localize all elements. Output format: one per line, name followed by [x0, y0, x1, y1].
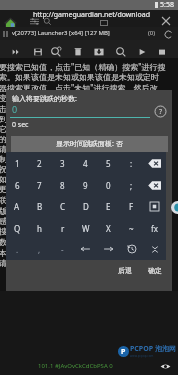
staticText: (0): [148, 29, 156, 37]
staticText: A: [14, 201, 20, 212]
button[interactable]: Settings: [30, 17, 39, 26]
button[interactable]: ;: [120, 174, 143, 196]
button[interactable]: C: [51, 195, 74, 217]
staticText: 4: [83, 158, 88, 169]
staticText: 联系方式：support@gameguardian.net 官网。: [0, 194, 172, 205]
button[interactable]: 1: [6, 152, 28, 174]
button[interactable]: X: [97, 217, 120, 239]
button[interactable]: Home: [3, 15, 18, 30]
staticText: ~: [129, 223, 134, 234]
staticText: .: [16, 244, 19, 255]
button[interactable]: 9: [74, 174, 97, 196]
staticText: 请勿用于联机游戏，以免造成封号等后果。: [0, 258, 151, 268]
staticText: 2: [37, 158, 42, 169]
staticText: 101.1 #JAvOvCkCdCbPSA 0: [38, 362, 113, 370]
staticText: 击"模糊搜索"按钮继续搜索。重复这个过程直: [0, 103, 158, 114]
staticText: 器搜索更改值，点击"未知"进行搜索。然后改: [0, 82, 158, 93]
button[interactable]: [143, 238, 166, 260]
button[interactable]: Play: [136, 46, 148, 58]
staticText: X: [106, 223, 111, 234]
button[interactable]: 5: [97, 152, 120, 174]
button[interactable]: GameGuardian: [171, 201, 178, 214]
button[interactable]: 6: [6, 174, 28, 196]
button[interactable]: Export: [93, 46, 105, 58]
staticText: Q: [14, 223, 21, 234]
button[interactable]: E: [97, 195, 120, 217]
staticText: 输入将要跳跃的秒数:: [12, 94, 77, 104]
button[interactable]: Help: [154, 105, 167, 118]
button[interactable]: Close: [159, 14, 173, 28]
staticText: D: [83, 201, 89, 212]
button[interactable]: Search unknown: [50, 46, 62, 58]
button[interactable]: W: [74, 217, 97, 239]
staticText: ,: [38, 244, 41, 255]
button[interactable]: r: [51, 217, 74, 239]
staticText: 要搜索已知值，点击"已知（精确）搜索"进行搜: [0, 61, 166, 72]
staticText: 5:58: [160, 0, 174, 10]
staticText: PCPOP 泡泡网: [130, 344, 176, 354]
staticText: www.pcpop.com: [130, 354, 154, 358]
button[interactable]: 7: [28, 174, 51, 196]
button[interactable]: Cast: [100, 20, 108, 28]
staticText: 它，使其保持不变。如果找不到，请尝试其它: [0, 124, 159, 134]
staticText: r: [61, 223, 65, 234]
staticText: E: [106, 201, 111, 212]
button[interactable]: 2: [28, 152, 51, 174]
button[interactable]: [74, 238, 97, 260]
button[interactable]: .: [6, 238, 28, 260]
button[interactable]: -: [51, 238, 74, 260]
button[interactable]: B: [28, 195, 51, 217]
staticText: W: [82, 223, 90, 234]
staticText: 0: [12, 103, 18, 115]
button[interactable]: Delete: [72, 46, 84, 58]
button[interactable]: 4: [74, 152, 97, 174]
button[interactable]: [143, 174, 166, 196]
staticText: 1: [15, 158, 20, 169]
button[interactable]: 3: [51, 152, 74, 174]
staticText: ?: [159, 107, 163, 117]
button[interactable]: h: [28, 217, 51, 239]
button[interactable]: [143, 195, 166, 217]
staticText: v[20773] Launcher3 [x64] [127 MB]: [12, 29, 110, 37]
button[interactable]: 显示时间跳跃面板: 否: [11, 136, 168, 152]
staticText: C: [60, 201, 66, 212]
button[interactable]: [97, 238, 120, 260]
staticText: 9: [83, 180, 88, 191]
button[interactable]: Stop: [156, 46, 168, 58]
button[interactable]: F: [120, 195, 143, 217]
button[interactable]: Forward: [10, 46, 22, 58]
button[interactable]: 8: [51, 174, 74, 196]
staticText: 搜索类型：精确、模糊、范围、未知等等。: [0, 226, 151, 236]
staticText: 5: [106, 158, 111, 169]
button[interactable]: fx: [143, 217, 166, 239]
staticText: :: [130, 158, 133, 169]
button[interactable]: [120, 238, 143, 260]
button[interactable]: A: [6, 195, 28, 217]
button[interactable]: Search: [115, 46, 127, 58]
staticText: 6: [15, 180, 20, 191]
staticText: 3: [60, 158, 65, 169]
staticText: 的搜索类型或数据类型来进行搜索。更多帮助: [0, 134, 159, 144]
button[interactable]: ~: [120, 217, 143, 239]
staticText: 索。如果该值是未知或如果该值是未知或定时: [0, 72, 159, 82]
button[interactable]: 0: [97, 174, 120, 196]
button[interactable]: D: [74, 195, 97, 217]
staticText: B: [37, 201, 43, 212]
button[interactable]: Search: [43, 17, 52, 26]
button[interactable]: Save: [32, 46, 44, 58]
staticText: P: [121, 347, 126, 357]
staticText: -: [61, 244, 64, 255]
staticText: 祝你游戏愉快！开心每一天，享受游戏乐趣。: [0, 164, 159, 174]
staticText: 感谢使用，祝你玩得开心，有问题请反馈。: [0, 216, 151, 226]
staticText: 版本信息：v101.1 构建日期 2023 年 11 月。: [0, 205, 158, 216]
button[interactable]: Show: [160, 361, 171, 372]
button[interactable]: :: [120, 152, 143, 174]
button[interactable]: Q: [6, 217, 28, 239]
button[interactable]: [143, 152, 166, 174]
staticText: http://gameguardian.net/download: [33, 10, 150, 20]
button[interactable]: Refresh: [163, 29, 174, 40]
button[interactable]: 后退: [114, 264, 136, 277]
button[interactable]: 确定: [144, 264, 166, 277]
staticText: 本程序需要 Root 权限才能正常运行使用。: [0, 247, 149, 258]
button[interactable]: ,: [28, 238, 51, 260]
